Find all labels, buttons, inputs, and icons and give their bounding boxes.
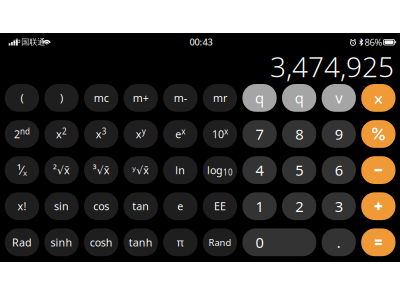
staticText: ʸ√x̄ (132, 163, 149, 177)
staticText: 2 (295, 196, 303, 216)
button[interactable]: 2 (5, 120, 39, 148)
button[interactable]: Rand (203, 228, 237, 256)
staticText: 0 (255, 233, 263, 252)
staticText: ln (175, 163, 185, 177)
button[interactable]: ln (163, 156, 197, 184)
button[interactable]: 4 (242, 156, 277, 184)
button[interactable]: Square root (44, 156, 79, 184)
button[interactable]: Y root of x (124, 156, 158, 184)
button[interactable]: EE (203, 192, 237, 220)
button[interactable]: log (203, 156, 237, 184)
staticText: mc (94, 91, 109, 105)
button[interactable]: 9 (322, 120, 356, 148)
staticText: 86% (365, 36, 383, 48)
button[interactable]: 0 (242, 228, 316, 256)
staticText: ( (20, 91, 23, 105)
staticText: v (335, 88, 342, 108)
staticText: cos (93, 199, 109, 213)
staticText: ) (60, 91, 63, 105)
staticText: tan (132, 199, 149, 213)
button[interactable]: Percent (322, 84, 356, 112)
staticText: EE (214, 199, 226, 213)
staticText: 3,474,925 (270, 48, 394, 85)
button[interactable]: x (124, 120, 158, 148)
button[interactable]: x (84, 120, 118, 148)
staticText: x (181, 126, 185, 137)
button[interactable]: sinh (44, 228, 79, 256)
staticText: . (337, 233, 341, 252)
staticText: 2 (14, 127, 20, 141)
button[interactable]: Percent (361, 120, 395, 148)
staticText: 9 (335, 124, 343, 144)
button[interactable]: 3 (322, 192, 356, 220)
button[interactable]: mr (203, 84, 237, 112)
staticText: mr (213, 91, 227, 105)
staticText: sin (54, 199, 69, 213)
staticText: y (142, 126, 146, 137)
staticText: 10 (212, 127, 224, 141)
staticText: x (56, 127, 62, 141)
button[interactable]: 5 (282, 156, 316, 184)
button[interactable]: m+ (124, 84, 158, 112)
staticText: cosh (90, 235, 113, 249)
staticText: π (177, 235, 184, 249)
staticText: 6 (335, 160, 343, 180)
button[interactable]: Clear (242, 84, 277, 112)
button[interactable]: sin (44, 192, 79, 220)
button[interactable]: π (163, 228, 197, 256)
button[interactable]: Plus (361, 192, 395, 220)
staticText: 4 (255, 160, 263, 180)
staticText: m- (174, 91, 187, 105)
staticText: 00:43 (189, 36, 212, 48)
staticText: 5 (295, 160, 303, 180)
staticText: e (177, 199, 183, 213)
button[interactable]: ( (5, 84, 39, 112)
button[interactable]: 7 (242, 120, 277, 148)
button[interactable]: Toggle sign (282, 84, 316, 112)
button[interactable]: . (322, 228, 356, 256)
button[interactable]: m- (163, 84, 197, 112)
button[interactable]: 8 (282, 120, 316, 148)
staticText: ³√x̄ (93, 163, 110, 177)
button[interactable]: tan (124, 192, 158, 220)
button[interactable]: Equals (361, 228, 395, 256)
button[interactable]: 2 (282, 192, 316, 220)
staticText: tanh (129, 235, 153, 249)
staticText: ¹⁄ₓ (17, 162, 27, 178)
staticText: q (255, 88, 264, 108)
button[interactable]: Multiply (361, 84, 395, 112)
staticText: Rad (12, 235, 32, 249)
button[interactable]: cos (84, 192, 118, 220)
button[interactable]: e (163, 192, 197, 220)
staticText: x (224, 126, 228, 137)
button[interactable]: e (163, 120, 197, 148)
staticText: 10 (223, 167, 233, 178)
staticText: x! (17, 199, 26, 213)
button[interactable]: 6 (322, 156, 356, 184)
staticText: nd (20, 126, 30, 137)
button[interactable]: mc (84, 84, 118, 112)
staticText: x (96, 127, 102, 141)
button[interactable]: x (44, 120, 79, 148)
button[interactable]: tanh (124, 228, 158, 256)
button[interactable]: 1 (242, 192, 277, 220)
staticText: 1 (255, 196, 263, 216)
button[interactable]: One over x (5, 156, 39, 184)
staticText: sinh (50, 235, 72, 249)
staticText: q (295, 88, 304, 108)
staticText: Rand (208, 236, 231, 248)
staticText: x (136, 127, 142, 141)
button[interactable]: 10 (203, 120, 237, 148)
staticText: ²√x̄ (53, 163, 70, 177)
staticText: 8 (295, 124, 303, 144)
button[interactable]: x! (5, 192, 39, 220)
button[interactable]: Cube root (84, 156, 118, 184)
button[interactable]: cosh (84, 228, 118, 256)
staticText: 3 (335, 196, 343, 216)
staticText: 3 (102, 126, 107, 137)
staticText: 中国联通 (13, 37, 45, 47)
button[interactable]: ) (44, 84, 79, 112)
button[interactable]: Rad (5, 228, 39, 256)
staticText: 7 (255, 124, 263, 144)
button[interactable]: Minus (361, 156, 395, 184)
